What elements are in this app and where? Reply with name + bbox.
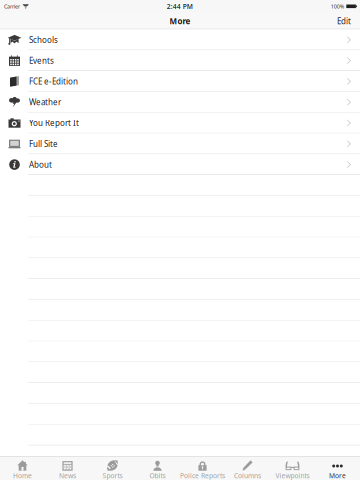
button[interactable]: Police Reports (180, 456, 225, 480)
button[interactable]: Home (0, 456, 45, 480)
button[interactable]: Obits (135, 456, 180, 480)
staticText: More (169, 16, 190, 26)
staticText: 100% (331, 3, 344, 10)
staticText: Carrier (4, 3, 20, 10)
staticText: Columns (234, 471, 261, 480)
staticText: Viewpoints (275, 471, 309, 480)
button[interactable]: Sports (90, 456, 135, 480)
staticText: About (29, 159, 52, 170)
staticText: Home (13, 471, 32, 480)
button[interactable]: You Report It (0, 113, 360, 133)
button[interactable]: Events (0, 50, 360, 71)
staticText: Edit (337, 16, 351, 26)
button[interactable]: More (315, 456, 360, 480)
staticText: Police Reports (180, 471, 225, 480)
button[interactable]: Weather (0, 92, 360, 113)
staticText: Weather (29, 97, 61, 107)
staticText: FCE e-Edition (29, 76, 78, 87)
button[interactable]: About (0, 154, 360, 175)
button[interactable]: FCE e-Edition (0, 71, 360, 92)
staticText: You Report It (29, 118, 79, 128)
staticText: More (329, 471, 346, 480)
staticText: Full Site (29, 138, 58, 149)
staticText: Obits (149, 471, 165, 480)
button[interactable]: Viewpoints (270, 456, 315, 480)
staticText: News (59, 471, 76, 480)
staticText: Sports (102, 471, 122, 480)
button[interactable]: News (45, 456, 90, 480)
button[interactable]: Full Site (0, 133, 360, 154)
button[interactable]: Edit (331, 13, 357, 29)
button[interactable]: Schools (0, 29, 360, 50)
staticText: Events (29, 55, 54, 66)
button[interactable]: Columns (225, 456, 270, 480)
staticText: Schools (29, 34, 58, 45)
staticText: 2:44 PM (167, 2, 193, 11)
